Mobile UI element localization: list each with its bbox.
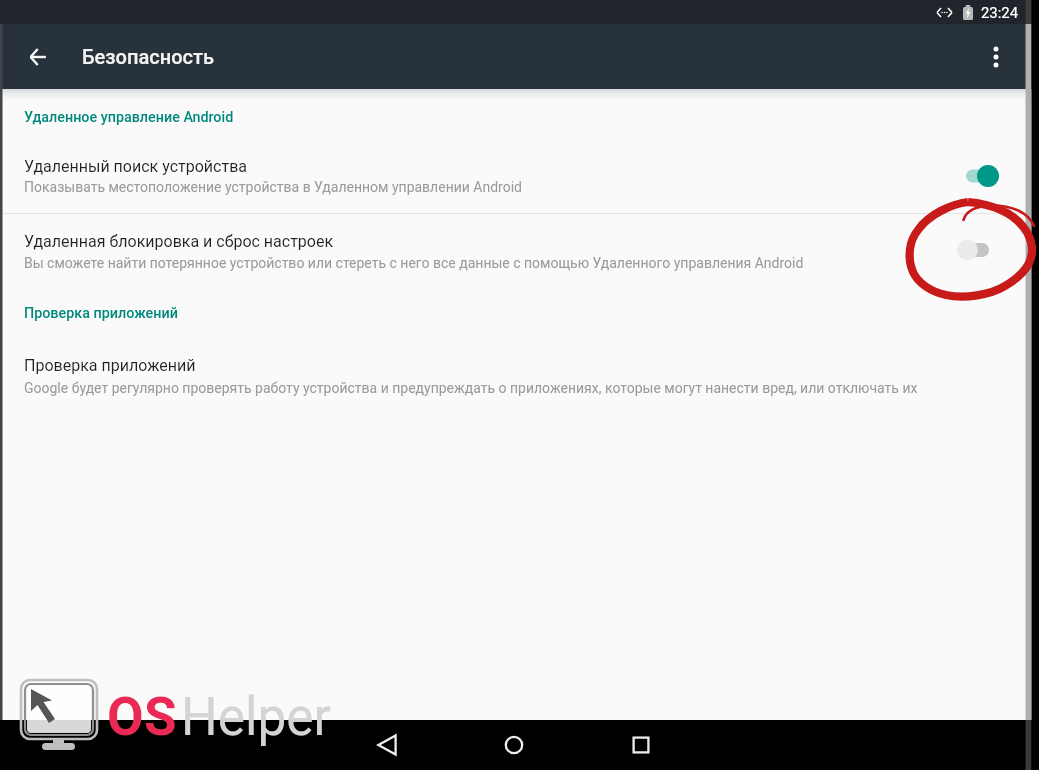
button[interactable]: More options — [974, 35, 1018, 79]
staticText: Проверка приложений — [24, 356, 196, 375]
staticText: Удаленный поиск устройства — [24, 157, 247, 176]
button[interactable]: Recent apps — [627, 731, 655, 759]
staticText: Показывать местоположение устройства в У… — [24, 179, 522, 195]
staticText: 23:24 — [981, 4, 1019, 21]
staticText: OS — [107, 686, 178, 748]
button[interactable]: Home — [500, 731, 528, 759]
button[interactable]: Remote device search, on — [958, 163, 1006, 189]
button[interactable]: Проверка приложений — [24, 305, 178, 322]
button[interactable]: Back — [14, 33, 62, 81]
button[interactable]: Remote lock and reset, off — [940, 237, 996, 263]
button[interactable]: Удаленное управление Android — [24, 109, 234, 126]
staticText: Helper — [181, 686, 331, 748]
staticText: Google будет регулярно проверять работу … — [24, 380, 918, 396]
staticText: Проверка приложений — [24, 305, 178, 322]
staticText: Удаленная блокировка и сброс настроек — [24, 232, 334, 251]
staticText: Удаленное управление Android — [24, 109, 234, 126]
staticText: Вы сможете найти потерянное устройство и… — [24, 255, 804, 271]
staticText: Безопасность — [82, 45, 214, 68]
button[interactable]: Back — [373, 731, 401, 759]
